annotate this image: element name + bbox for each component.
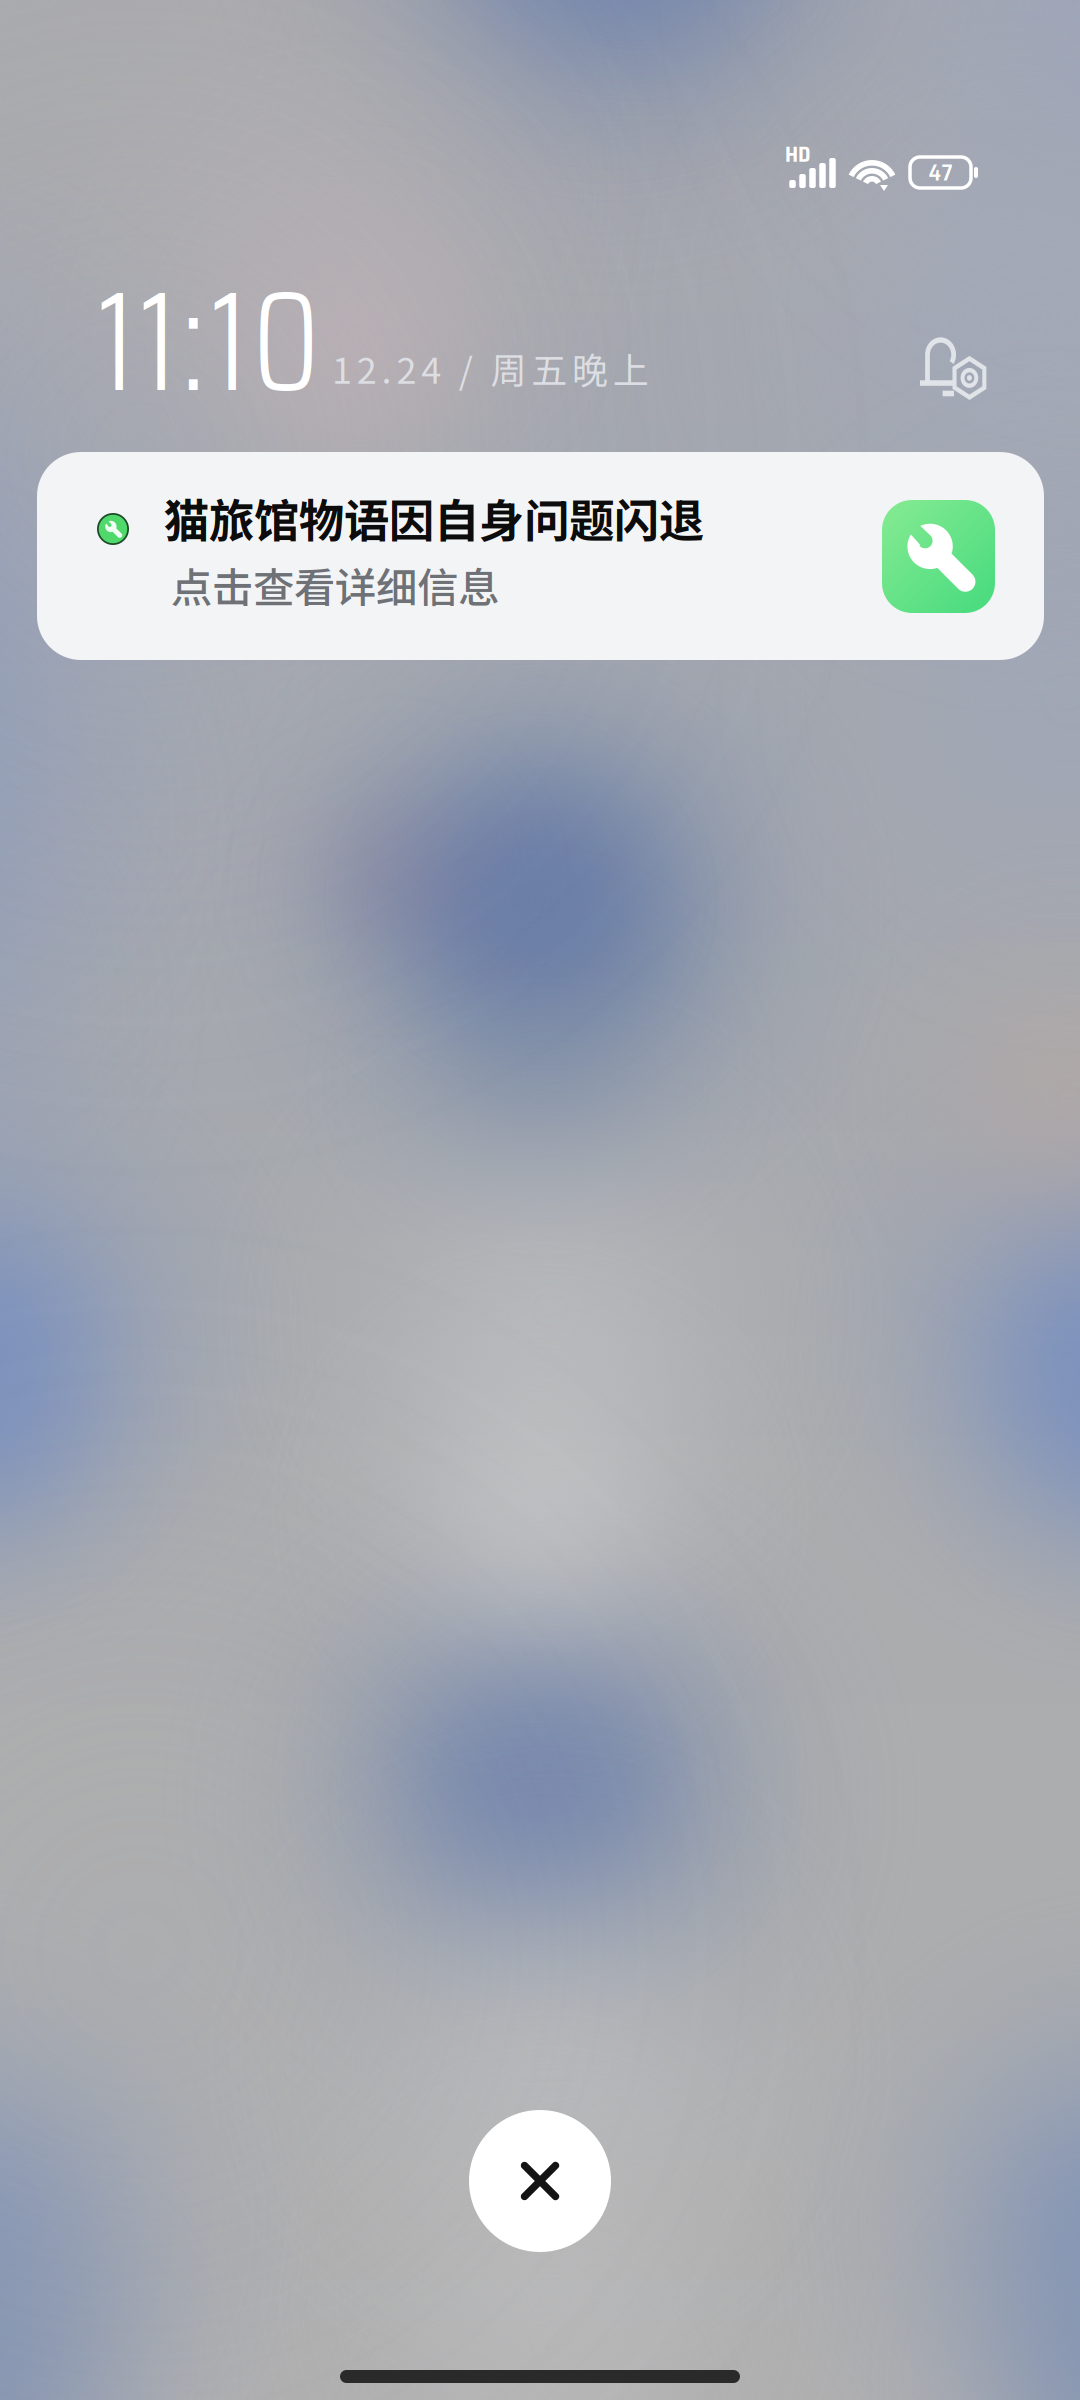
staticText: 12.24 / 周五晚上 [332,342,649,394]
button[interactable]: 猫旅馆物语因自身问题闪退 [37,452,1044,660]
staticText: 点击查看详细信息 [171,555,499,615]
staticText: HD [785,137,810,171]
button[interactable]: Notification settings [908,319,1002,409]
staticText: 11:10 [97,231,320,451]
staticText: 猫旅馆物语因自身问题闪退 [164,485,704,551]
button[interactable]: Close [469,2110,611,2252]
staticText: 47 [928,155,952,190]
